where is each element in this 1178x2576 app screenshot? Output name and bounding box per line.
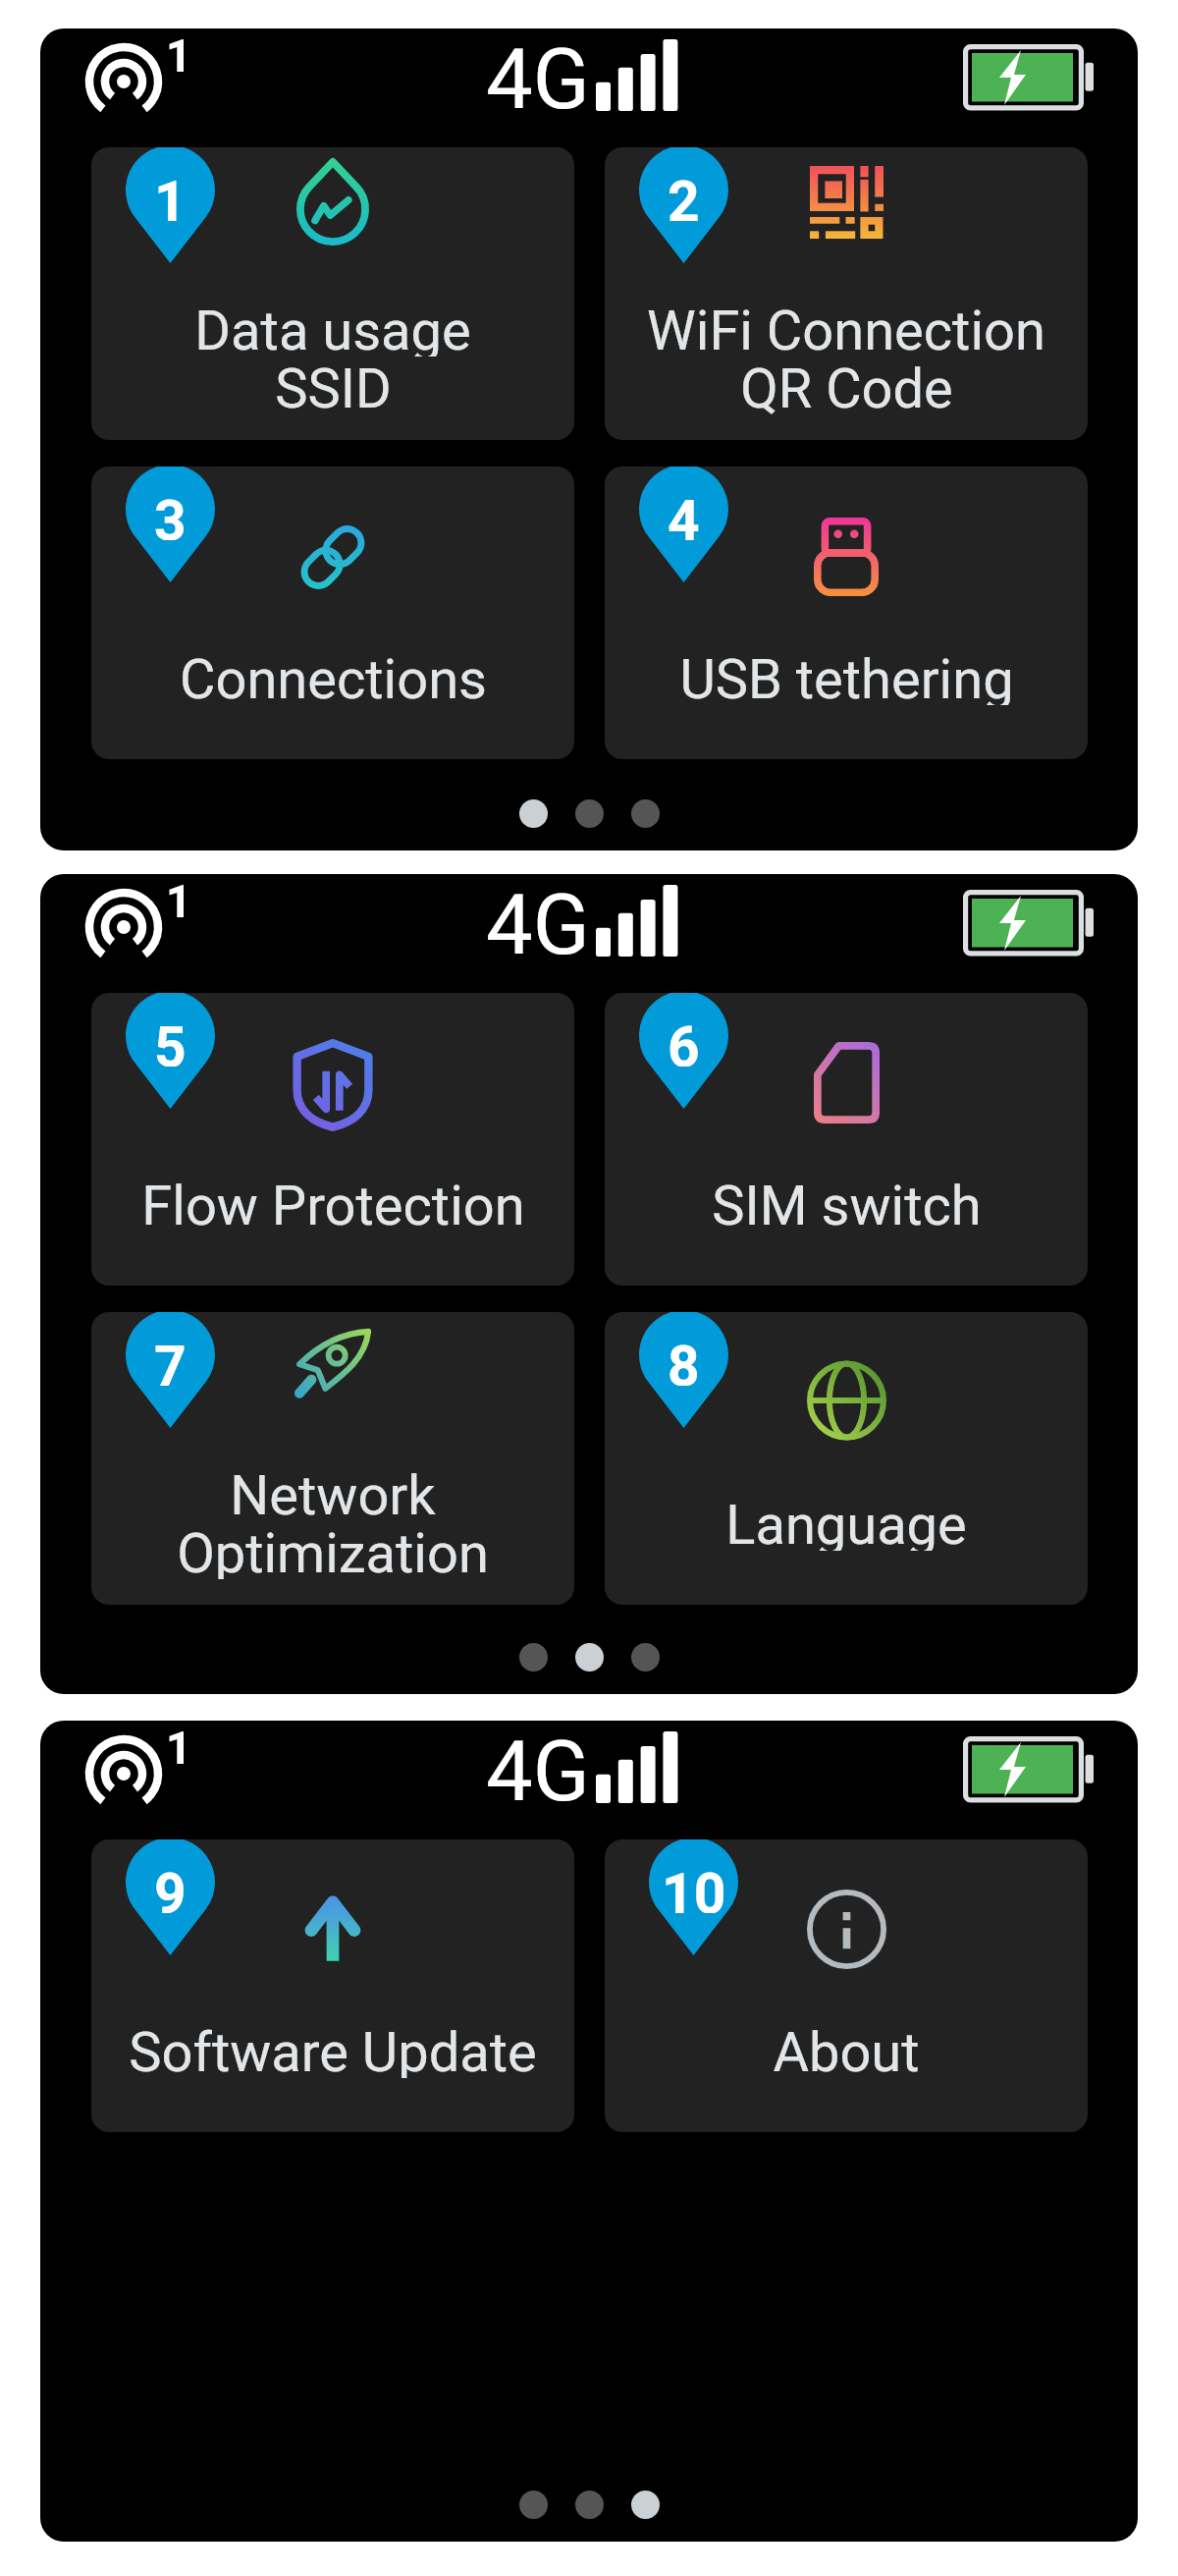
- staticText: QR Code: [740, 356, 953, 414]
- button[interactable]: Go to page 1: [519, 1643, 548, 1672]
- staticText: Connections: [180, 647, 487, 705]
- staticText: 1: [166, 875, 192, 928]
- staticText: 9: [154, 1861, 187, 1913]
- staticText: WiFi Connection: [647, 299, 1045, 356]
- other: Hotspot: [80, 878, 187, 972]
- staticText: 8: [668, 1334, 700, 1386]
- button[interactable]: About: [605, 1839, 1088, 2132]
- button[interactable]: Network: [91, 1312, 574, 1605]
- other: Hotspot: [80, 1725, 187, 1819]
- staticText: 5: [154, 1014, 187, 1067]
- button[interactable]: Language: [605, 1312, 1088, 1605]
- staticText: 7: [154, 1334, 187, 1386]
- staticText: 2: [668, 169, 700, 221]
- button[interactable]: SIM switch: [605, 993, 1088, 1286]
- staticText: 4G: [486, 1723, 590, 1821]
- staticText: SSID: [275, 356, 392, 414]
- staticText: About: [773, 2020, 920, 2078]
- button[interactable]: Go to page 1: [519, 2491, 548, 2519]
- button[interactable]: Go to page 1: [519, 799, 548, 828]
- staticText: SIM switch: [712, 1174, 982, 1232]
- staticText: Data usage: [194, 299, 471, 356]
- staticText: 4G: [486, 30, 590, 129]
- staticText: 4G: [486, 876, 590, 974]
- staticText: 1: [166, 1722, 192, 1775]
- button[interactable]: Go to page 3: [631, 2491, 660, 2519]
- button[interactable]: Flow Protection: [91, 993, 574, 1286]
- staticText: 3: [154, 488, 187, 540]
- staticText: Language: [725, 1493, 967, 1551]
- staticText: 4: [668, 488, 700, 540]
- other: Battery charging: [963, 44, 1094, 112]
- button[interactable]: Go to page 2: [575, 799, 604, 828]
- staticText: 1: [166, 29, 192, 82]
- other: Hotspot: [80, 32, 187, 127]
- staticText: Optimization: [177, 1521, 489, 1579]
- button[interactable]: WiFi Connection: [605, 147, 1088, 440]
- staticText: 1: [154, 169, 187, 221]
- button[interactable]: Go to page 3: [631, 1643, 660, 1672]
- button[interactable]: Data usage: [91, 147, 574, 440]
- button[interactable]: Software Update: [91, 1839, 574, 2132]
- other: Battery charging: [963, 1736, 1094, 1804]
- staticText: 6: [668, 1014, 700, 1067]
- button[interactable]: Go to page 2: [575, 1643, 604, 1672]
- button[interactable]: Go to page 3: [631, 799, 660, 828]
- staticText: 10: [662, 1861, 726, 1913]
- staticText: Flow Protection: [141, 1174, 525, 1232]
- staticText: USB tethering: [679, 647, 1014, 705]
- button[interactable]: USB tethering: [605, 466, 1088, 759]
- button[interactable]: Go to page 2: [575, 2491, 604, 2519]
- other: Battery charging: [963, 890, 1094, 958]
- staticText: Network: [230, 1463, 436, 1521]
- staticText: Software Update: [129, 2020, 537, 2078]
- button[interactable]: Connections: [91, 466, 574, 759]
